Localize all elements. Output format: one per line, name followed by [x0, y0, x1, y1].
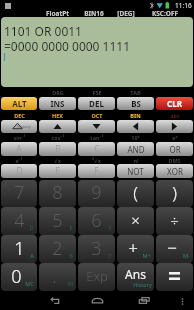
staticText: cos⁻¹	[51, 134, 65, 141]
button[interactable]: 4	[1, 207, 37, 235]
button[interactable]: DEL	[78, 97, 115, 110]
staticText: x⁻¹	[15, 157, 23, 164]
button[interactable]: History	[1, 120, 37, 133]
button[interactable]: C	[78, 142, 115, 156]
button[interactable]: More options	[175, 294, 189, 308]
staticText: −	[167, 236, 177, 259]
staticText: ÷	[170, 210, 179, 230]
staticText: M	[68, 280, 73, 287]
staticText: Ans	[125, 266, 146, 282]
button[interactable]: 5	[39, 207, 76, 235]
button[interactable]: Back	[44, 291, 64, 310]
staticText: ³√x	[92, 157, 101, 164]
button[interactable]: XOR	[156, 164, 193, 178]
button[interactable]: D	[1, 164, 37, 178]
staticText: FSE	[92, 89, 102, 96]
staticText: NOT	[127, 166, 144, 177]
button[interactable]: ALT	[1, 97, 37, 110]
button[interactable]	[117, 120, 154, 133]
button[interactable]: AND	[117, 142, 154, 156]
staticText: INS	[50, 98, 65, 109]
button[interactable]: )	[156, 180, 193, 207]
button[interactable]: +	[117, 235, 154, 263]
staticText: F	[109, 224, 112, 231]
button[interactable]	[156, 120, 193, 133]
button[interactable]: INS	[39, 97, 76, 110]
button[interactable]: 6	[78, 207, 115, 235]
staticText: DEL	[89, 98, 104, 109]
button[interactable]: CLR	[156, 97, 193, 110]
staticText: 2	[52, 236, 63, 261]
staticText: FloatPt	[42, 9, 73, 18]
button[interactable]: −	[156, 235, 193, 263]
button[interactable]	[156, 263, 193, 291]
staticText: OR	[169, 144, 181, 155]
staticText: BIN16	[79, 9, 109, 18]
staticText: 7	[14, 180, 25, 205]
staticText: 3	[91, 236, 102, 261]
button[interactable]: Ans	[117, 263, 154, 291]
staticText: 6	[91, 208, 102, 233]
staticText: 11:16	[175, 1, 192, 10]
button[interactable]: 7	[1, 180, 37, 207]
staticText: AND	[127, 144, 145, 155]
staticText: CLR	[167, 98, 182, 109]
staticText: Exp	[86, 267, 108, 285]
button[interactable]: ×	[117, 207, 154, 235]
staticText: BIN	[130, 112, 141, 119]
button[interactable]: .	[39, 263, 76, 291]
button[interactable]: 8	[39, 180, 76, 207]
staticText: B	[69, 252, 73, 259]
staticText: BS	[131, 98, 141, 109]
button[interactable]: Exp	[78, 263, 115, 291]
staticText: TAB	[130, 89, 141, 96]
staticText: DRG	[52, 89, 64, 96]
button[interactable]: BS	[117, 97, 154, 110]
button[interactable]: Home	[87, 291, 107, 310]
staticText: A	[16, 143, 22, 155]
staticText: F	[94, 165, 99, 177]
button[interactable]: 3	[78, 235, 115, 263]
staticText: .	[52, 264, 57, 289]
button[interactable]: 0	[1, 263, 37, 291]
button[interactable]: 2	[39, 235, 76, 263]
button[interactable]: A	[1, 142, 37, 156]
staticText: DMS	[168, 157, 181, 164]
button[interactable]: B	[39, 142, 76, 156]
staticText: M+	[142, 252, 151, 259]
staticText: DEC	[14, 112, 25, 119]
staticText: +	[128, 236, 138, 259]
button[interactable]: 1	[1, 235, 37, 263]
staticText: tan⁻¹	[90, 134, 104, 141]
staticText: D	[29, 224, 34, 231]
staticText: ALT	[12, 98, 27, 109]
staticText: 1101 OR 0011	[4, 23, 82, 39]
button[interactable]: E	[39, 164, 76, 178]
staticText: abs	[170, 112, 180, 119]
staticText: n!	[133, 157, 139, 164]
staticText: C	[108, 252, 112, 259]
staticText: 10ˣ	[131, 134, 140, 141]
button[interactable]: (	[117, 180, 154, 207]
staticText: E	[55, 165, 60, 177]
staticText: History	[16, 124, 31, 130]
staticText: KSC:OFF	[148, 9, 182, 18]
staticText: C	[94, 143, 100, 155]
staticText: sin⁻¹	[13, 134, 26, 141]
button[interactable]: Recent apps	[134, 291, 154, 310]
button[interactable]: 9	[78, 180, 115, 207]
staticText: 5	[52, 208, 63, 233]
button[interactable]	[78, 120, 115, 133]
staticText: 4	[14, 208, 25, 233]
button[interactable]: F	[78, 164, 115, 178]
button[interactable]: OR	[156, 142, 193, 156]
staticText: HEX	[52, 112, 63, 119]
staticText: OCT	[91, 112, 103, 119]
button[interactable]	[39, 120, 76, 133]
button[interactable]: ÷	[156, 207, 193, 235]
staticText: 9	[91, 180, 102, 205]
button[interactable]: NOT	[117, 164, 154, 178]
staticText: =0000 0000 0000 1111	[4, 38, 131, 54]
staticText: XOR	[167, 166, 183, 177]
staticText: [DEG]	[111, 9, 141, 18]
